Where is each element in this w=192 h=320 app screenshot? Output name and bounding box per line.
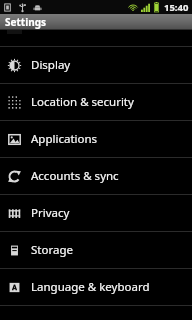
button[interactable]: Applications bbox=[0, 121, 192, 157]
staticText: Privacy bbox=[31, 205, 70, 221]
staticText: Accounts & sync bbox=[31, 168, 119, 184]
staticText: Settings bbox=[5, 15, 46, 29]
button[interactable]: Display bbox=[0, 47, 192, 83]
button[interactable]: Accounts & sync bbox=[0, 158, 192, 194]
button[interactable]: Language & keyboard bbox=[0, 269, 192, 305]
staticText: Display bbox=[31, 57, 71, 73]
button[interactable]: Storage bbox=[0, 232, 192, 268]
staticText: Language & keyboard bbox=[31, 279, 150, 295]
button[interactable] bbox=[0, 30, 192, 47]
button[interactable]: Location & security bbox=[0, 84, 192, 120]
button[interactable]: Privacy bbox=[0, 195, 192, 231]
staticText: Applications bbox=[31, 131, 98, 147]
staticText: 15:40 bbox=[164, 1, 189, 14]
staticText: Location & security bbox=[31, 94, 134, 110]
staticText: Storage bbox=[31, 242, 73, 258]
